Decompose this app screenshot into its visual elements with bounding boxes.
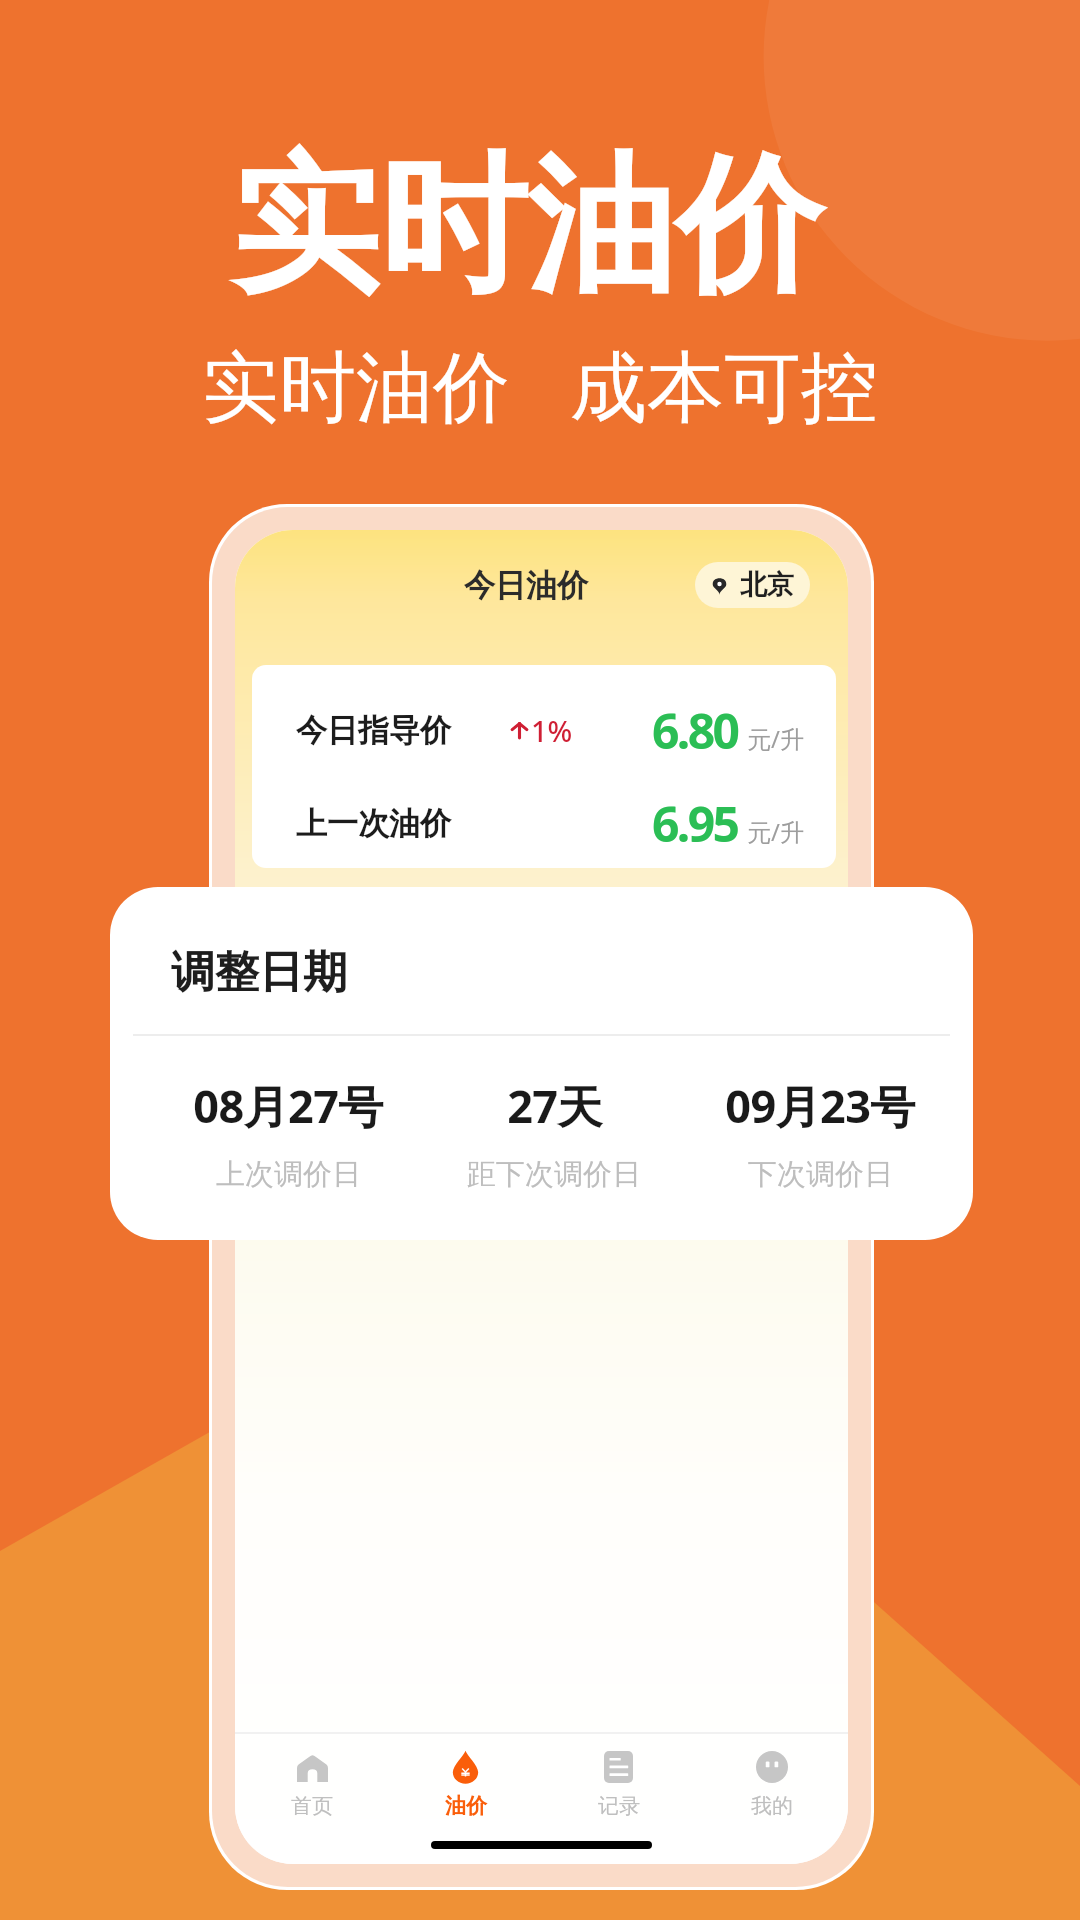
staticText: 距下次调价日 — [467, 1156, 641, 1193]
staticText: 实时油价 — [231, 133, 823, 319]
staticText: 记录 — [598, 1793, 640, 1819]
button[interactable]: 首页 — [235, 1746, 389, 1819]
staticText: 下次调价日 — [748, 1156, 893, 1193]
staticText: 今日油价 — [464, 566, 588, 605]
staticText: 元/升 — [747, 815, 804, 848]
staticText: 北京 — [740, 568, 794, 602]
button[interactable]: 北京 — [695, 562, 810, 608]
staticText: 08月27号 — [193, 1075, 383, 1136]
staticText: 09月23号 — [725, 1075, 915, 1136]
staticText: 27天 — [507, 1075, 602, 1136]
button[interactable]: 记录 — [542, 1746, 695, 1819]
staticText: 6.95 — [652, 791, 738, 856]
staticText: 今日指导价 — [296, 711, 451, 750]
staticText: 6.80 — [652, 698, 738, 763]
staticText: 元/升 — [747, 722, 804, 755]
staticText: 调整日期 — [171, 945, 347, 1000]
staticText: 实时油价 成本可控 — [202, 332, 879, 437]
staticText: 我的 — [751, 1793, 793, 1819]
staticText: 首页 — [291, 1793, 333, 1819]
button[interactable]: 我的 — [695, 1746, 848, 1819]
staticText: 上一次油价 — [296, 804, 451, 843]
staticText: 油价 — [445, 1793, 487, 1819]
staticText: 上次调价日 — [216, 1156, 361, 1193]
staticText: 1% — [531, 711, 573, 750]
button[interactable]: 油价 — [389, 1746, 542, 1819]
